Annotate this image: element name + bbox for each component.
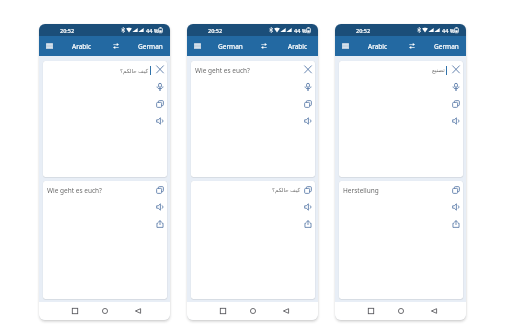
button[interactable]: Arabic xyxy=(354,36,402,56)
button[interactable]: Arabic xyxy=(274,36,318,56)
staticText: German xyxy=(218,42,243,51)
button[interactable]: Listen xyxy=(449,200,463,214)
button[interactable]: Home xyxy=(394,304,408,318)
button[interactable]: Swap languages xyxy=(109,39,123,53)
button[interactable]: Copy xyxy=(449,183,463,197)
button[interactable]: Copy xyxy=(301,183,315,197)
staticText: 20:52 xyxy=(208,27,223,34)
button[interactable]: Open navigation menu xyxy=(191,40,203,52)
staticText: 20:52 xyxy=(356,27,371,34)
button[interactable]: Share xyxy=(301,217,315,231)
button[interactable]: German xyxy=(206,36,254,56)
staticText: Arabic xyxy=(288,42,308,51)
button[interactable]: Arabic xyxy=(58,36,106,56)
button[interactable]: Listen xyxy=(301,200,315,214)
button[interactable]: Listen xyxy=(449,114,463,128)
staticText: Herstellung xyxy=(343,186,379,195)
button[interactable]: German xyxy=(126,36,170,56)
button[interactable]: Swap languages xyxy=(257,39,271,53)
button[interactable]: Listen xyxy=(301,114,315,128)
button[interactable]: Copy xyxy=(153,97,167,111)
staticText: كيف حالكم؟ xyxy=(120,67,149,75)
button[interactable]: Listen xyxy=(153,200,167,214)
staticText: تصنيع xyxy=(432,67,445,74)
button[interactable]: German xyxy=(422,36,466,56)
staticText: Arabic xyxy=(72,42,92,51)
staticText: 44 % xyxy=(146,27,159,34)
staticText: Wie geht es euch? xyxy=(195,66,250,75)
button[interactable]: Open navigation menu xyxy=(339,40,351,52)
button[interactable]: Voice input xyxy=(301,80,315,94)
button[interactable]: Home xyxy=(98,304,112,318)
button[interactable]: Recent apps xyxy=(364,304,378,318)
button[interactable]: Share xyxy=(153,217,167,231)
button[interactable]: Back xyxy=(131,304,145,318)
button[interactable]: Clear text xyxy=(449,63,463,77)
button[interactable]: Recent apps xyxy=(68,304,82,318)
button[interactable]: Share xyxy=(449,217,463,231)
staticText: كيف حالكم؟ xyxy=(272,186,301,194)
button[interactable]: Back xyxy=(279,304,293,318)
staticText: German xyxy=(138,42,163,51)
button[interactable]: Listen xyxy=(153,114,167,128)
button[interactable]: Voice input xyxy=(153,80,167,94)
button[interactable]: Home xyxy=(246,304,260,318)
button[interactable]: Swap languages xyxy=(405,39,419,53)
button[interactable]: Voice input xyxy=(449,80,463,94)
staticText: 20:52 xyxy=(60,27,75,34)
button[interactable]: Back xyxy=(427,304,441,318)
staticText: German xyxy=(434,42,459,51)
button[interactable]: Open navigation menu xyxy=(43,40,55,52)
button[interactable]: Copy xyxy=(449,97,463,111)
staticText: 44 % xyxy=(294,27,307,34)
staticText: Arabic xyxy=(368,42,388,51)
button[interactable]: Copy xyxy=(301,97,315,111)
staticText: 44 % xyxy=(442,27,455,34)
button[interactable]: Clear text xyxy=(153,63,167,77)
button[interactable]: Recent apps xyxy=(216,304,230,318)
button[interactable]: Copy xyxy=(153,183,167,197)
staticText: Wie geht es euch? xyxy=(47,186,102,195)
button[interactable]: Clear text xyxy=(301,63,315,77)
